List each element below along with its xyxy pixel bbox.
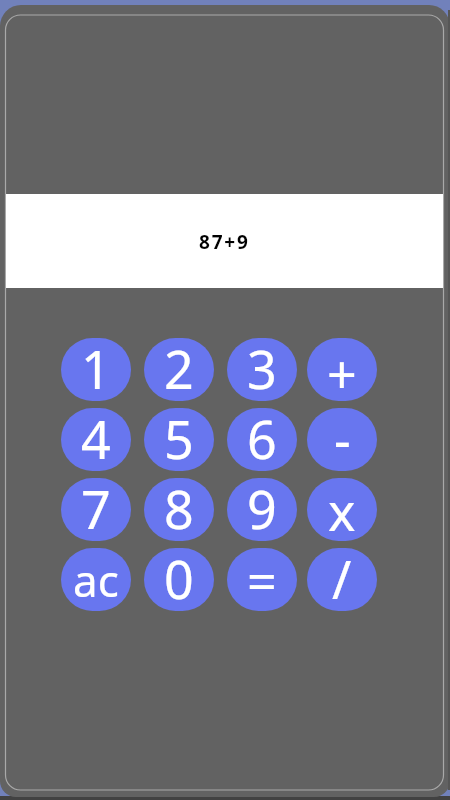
staticText: / (332, 548, 352, 606)
staticText: 87+9 (199, 229, 250, 255)
staticText: = (247, 548, 277, 608)
button[interactable]: x (307, 478, 377, 541)
staticText: + (327, 338, 357, 401)
button[interactable]: 3 (227, 338, 297, 401)
staticText: 4 (81, 408, 111, 466)
staticText: 6 (247, 408, 277, 466)
staticText: 1 (81, 338, 111, 396)
staticText: 2 (164, 338, 194, 396)
button[interactable]: 1 (61, 338, 131, 401)
button[interactable]: 9 (227, 478, 297, 541)
button[interactable]: 0 (144, 548, 214, 611)
staticText: ac (73, 550, 119, 610)
button[interactable]: 8 (144, 478, 214, 541)
button[interactable]: 6 (227, 408, 297, 471)
button[interactable]: ac (61, 548, 131, 611)
button[interactable]: 7 (61, 478, 131, 541)
staticText: - (334, 408, 351, 466)
staticText: 5 (164, 408, 194, 466)
button[interactable]: / (307, 548, 377, 611)
staticText: 8 (164, 478, 194, 536)
button[interactable]: + (307, 338, 377, 401)
button[interactable]: 4 (61, 408, 131, 471)
staticText: 9 (247, 478, 277, 536)
button[interactable]: - (307, 408, 377, 471)
staticText: 3 (247, 338, 277, 396)
staticText: 7 (81, 478, 111, 536)
staticText: 0 (164, 548, 194, 606)
button[interactable]: = (227, 548, 297, 611)
button[interactable]: 2 (144, 338, 214, 401)
staticText: x (328, 478, 356, 538)
button[interactable]: 5 (144, 408, 214, 471)
